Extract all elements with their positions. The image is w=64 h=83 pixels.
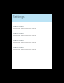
staticText: Subtitle description here xyxy=(13,41,37,44)
staticText: Subtitle description here xyxy=(13,34,37,37)
staticText: Subtitle description here xyxy=(13,27,37,30)
staticText: Item title xyxy=(13,45,24,48)
staticText: Settings xyxy=(13,15,25,19)
staticText: Item title xyxy=(13,31,24,34)
staticText: Subtitle description here xyxy=(13,48,37,51)
staticText: Item title xyxy=(13,38,24,41)
staticText: Item title xyxy=(13,24,24,27)
